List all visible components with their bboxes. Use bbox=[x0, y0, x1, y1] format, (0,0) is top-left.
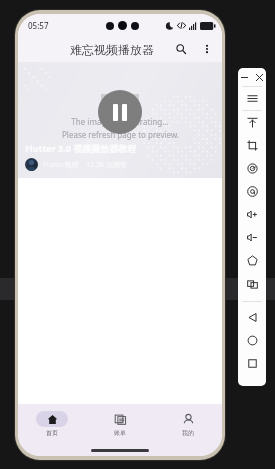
button[interactable]: Screenshot bbox=[238, 272, 266, 295]
staticText: 05:57 bbox=[28, 20, 49, 31]
button[interactable]: Video player bbox=[18, 62, 222, 178]
staticText: 难忘视频播放器 bbox=[70, 42, 154, 57]
staticText: 12.5K 次观看 bbox=[86, 160, 128, 170]
button[interactable]: Power bbox=[238, 111, 266, 134]
staticText: 账单 bbox=[114, 429, 126, 437]
button[interactable]: More options bbox=[198, 40, 216, 58]
button[interactable]: Rotate device bbox=[238, 249, 266, 272]
button[interactable]: Menu bbox=[238, 87, 266, 110]
button[interactable]: 账单 bbox=[86, 404, 154, 444]
staticText: The image is generating... bbox=[71, 116, 169, 127]
button[interactable]: Close bbox=[256, 74, 263, 81]
staticText: Flutter教程 bbox=[43, 160, 79, 170]
button[interactable]: Search bbox=[172, 40, 190, 58]
button[interactable]: Minimize bbox=[241, 74, 248, 81]
button[interactable]: Volume down bbox=[238, 226, 266, 249]
button[interactable]: Rotate bbox=[238, 134, 266, 157]
button[interactable]: Recents bbox=[238, 352, 266, 375]
button[interactable]: Home bbox=[238, 329, 266, 352]
button[interactable]: Zoom bbox=[238, 157, 266, 180]
button[interactable]: Back bbox=[238, 306, 266, 329]
button[interactable]: Pause bbox=[98, 90, 142, 134]
button[interactable]: Volume up bbox=[238, 203, 266, 226]
button[interactable]: 我的 bbox=[154, 404, 222, 444]
staticText: 我的 bbox=[182, 429, 194, 437]
button[interactable]: 首页 bbox=[18, 404, 86, 444]
button[interactable]: Position bbox=[238, 180, 266, 203]
staticText: Please refresh page to preview. bbox=[62, 129, 179, 140]
staticText: 首页 bbox=[46, 429, 58, 437]
staticText: Flutter 3.0 视频播放器教程 bbox=[25, 142, 137, 154]
